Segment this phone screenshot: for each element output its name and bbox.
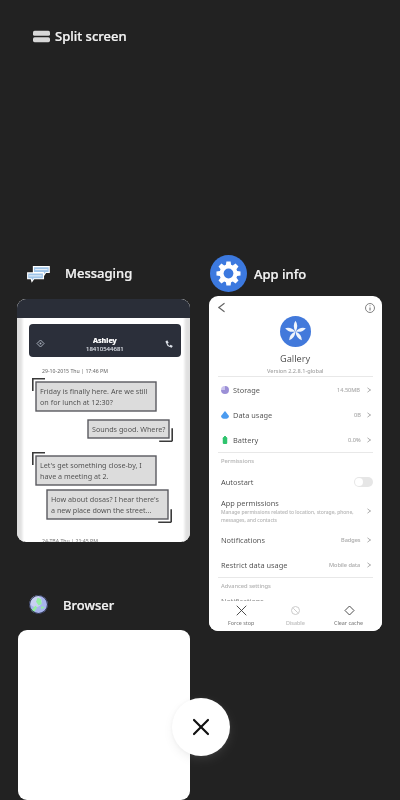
staticText: Sounds good. Where? [92, 424, 166, 434]
button[interactable]: Close all [172, 698, 230, 756]
button[interactable]: Browser [29, 595, 115, 614]
staticText: Notifications [221, 596, 264, 606]
staticText: Version 2.2.8.1-global [267, 367, 324, 375]
staticText: Friday is finally here. Are we still on … [40, 386, 148, 407]
button[interactable]: App permissions [209, 494, 382, 527]
staticText: App permissions [221, 498, 279, 508]
staticText: Permissions [221, 457, 255, 465]
button[interactable]: Battery [209, 427, 382, 452]
button[interactable]: Split screen [33, 25, 131, 47]
staticText: Storage [233, 385, 260, 395]
button[interactable]: Force stop [215, 606, 268, 626]
staticText: Disable [286, 619, 305, 626]
staticText: Ashley [93, 335, 117, 345]
button[interactable]: Ashley [17, 299, 190, 542]
staticText: Data usage [233, 410, 273, 420]
button[interactable]: Back [215, 301, 228, 314]
staticText: Notifications [221, 535, 265, 545]
staticText: Battery [233, 435, 259, 445]
staticText: 14.50MB [337, 386, 361, 394]
button[interactable]: Storage [209, 377, 382, 402]
button[interactable]: Disable [268, 606, 322, 626]
button[interactable]: More info [365, 303, 375, 313]
staticText: Manage permissions related to location, … [221, 509, 354, 523]
button[interactable]: Back [209, 296, 382, 631]
staticText: 24-TBA Thu | 21:45 PM [42, 537, 98, 542]
staticText: Autostart [221, 477, 254, 487]
staticText: Gallery [280, 352, 311, 365]
staticText: Advanced settings [221, 582, 271, 590]
staticText: 0B [354, 411, 361, 419]
staticText: Messaging [65, 264, 133, 282]
button[interactable]: Clear cache [322, 606, 376, 626]
staticText: How about dosas? I hear there's a new pl… [51, 494, 159, 515]
staticText: Clear cache [334, 619, 364, 626]
staticText: 29-10-2015 Thu | 17:46 PM [42, 367, 108, 374]
button[interactable] [18, 630, 190, 800]
staticText: Browser [63, 596, 115, 614]
button[interactable]: Notifications [209, 527, 382, 552]
staticText: App info [254, 265, 307, 283]
staticText: Mobile data [329, 561, 361, 569]
button[interactable]: Data usage [209, 402, 382, 427]
button[interactable]: Restrict data usage [209, 552, 382, 577]
button[interactable]: Messaging [28, 264, 133, 282]
staticText: Force stop [228, 619, 255, 626]
staticText: Let's get something close-by, I have a m… [40, 460, 142, 481]
staticText: Restrict data usage [221, 560, 288, 570]
button[interactable]: Autostart [209, 469, 382, 494]
staticText: Split screen [55, 27, 127, 45]
button[interactable]: App info [210, 255, 307, 292]
staticText: 18410544681 [86, 345, 124, 353]
staticText: 0.0% [348, 436, 361, 444]
staticText: Badges [341, 536, 361, 544]
